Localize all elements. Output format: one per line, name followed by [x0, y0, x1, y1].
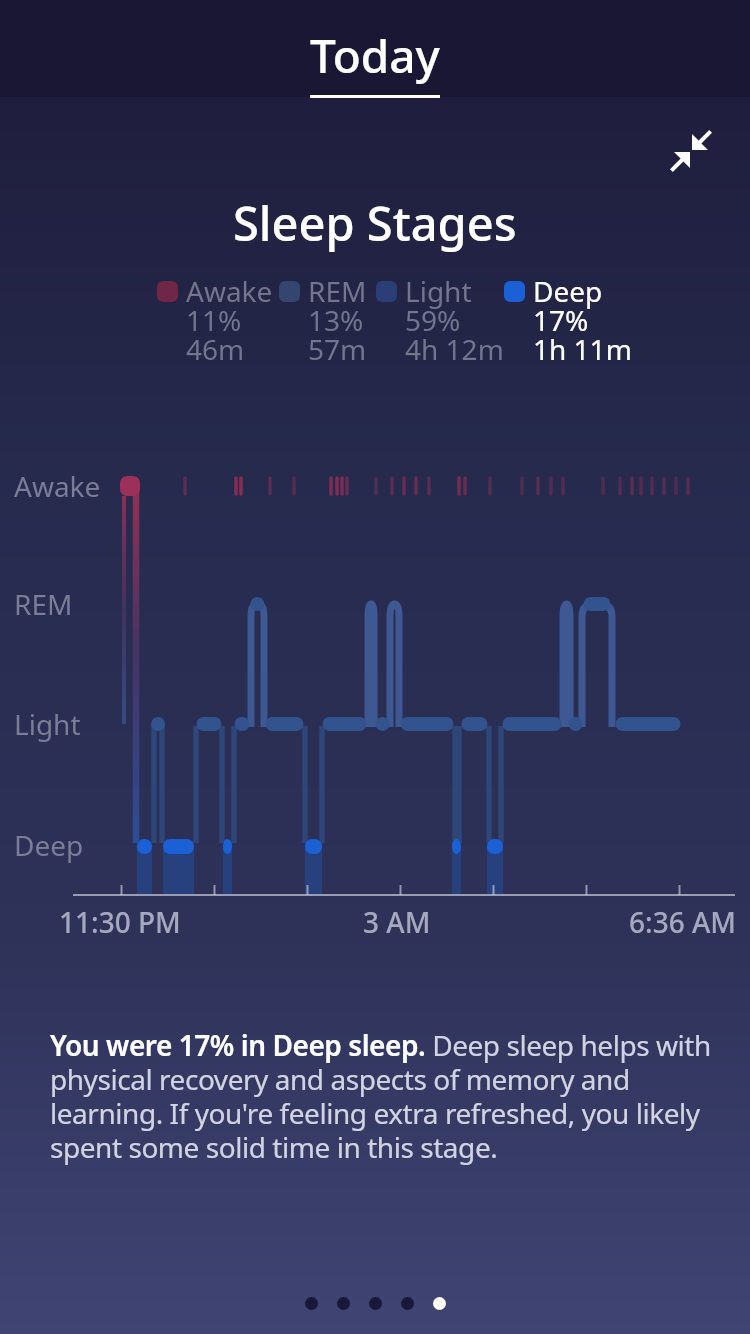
staticText: 3 AM: [363, 903, 431, 941]
staticText: Awake: [186, 272, 273, 310]
staticText: REM: [14, 585, 73, 623]
button[interactable]: [433, 1297, 446, 1310]
staticText: 1h 11m: [533, 330, 632, 368]
staticText: Sleep Stages: [233, 191, 517, 255]
button[interactable]: [337, 1297, 350, 1310]
button[interactable]: Deep: [504, 270, 622, 368]
staticText: Light: [405, 272, 472, 310]
staticText: Awake: [14, 467, 101, 505]
button[interactable]: Awake: [157, 270, 275, 368]
staticText: 59%: [405, 301, 461, 339]
staticText: 46m: [186, 330, 245, 368]
button[interactable]: Today: [280, 24, 470, 96]
button[interactable]: [369, 1297, 382, 1310]
staticText: 6:36 AM: [629, 903, 736, 941]
staticText: 11:30 PM: [59, 903, 181, 941]
staticText: Deep: [14, 826, 84, 864]
staticText: 11%: [186, 301, 242, 339]
button[interactable]: [305, 1297, 318, 1310]
button[interactable]: [401, 1297, 414, 1310]
staticText: Deep: [533, 272, 603, 310]
staticText: Light: [14, 705, 81, 743]
button[interactable]: REM: [279, 270, 397, 368]
button[interactable]: [667, 127, 715, 175]
button[interactable]: Light: [376, 270, 494, 368]
staticText: 13%: [308, 301, 364, 339]
staticText: 57m: [308, 330, 367, 368]
staticText: You were 17% in Deep sleep. Deep sleep h…: [50, 1026, 711, 1166]
staticText: 4h 12m: [405, 330, 504, 368]
staticText: Today: [310, 24, 440, 87]
staticText: REM: [308, 272, 367, 310]
staticText: 17%: [533, 301, 589, 339]
